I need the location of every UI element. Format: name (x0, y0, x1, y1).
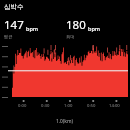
staticText: 최대 (66, 34, 75, 39)
staticText: 0:50 (87, 103, 96, 109)
staticText: 0:30 (41, 103, 50, 109)
button[interactable]: Heart rate chart (0, 45, 130, 103)
staticText: 1:00 (64, 103, 73, 109)
staticText: bpm (26, 25, 39, 32)
button[interactable]: 147 (4, 17, 66, 39)
staticText: 0:00 (18, 103, 27, 109)
staticText: 147 (4, 17, 24, 33)
staticText: 180 (66, 17, 86, 33)
staticText: bpm (88, 25, 101, 32)
staticText: 14:00 (109, 103, 120, 109)
staticText: 평균 (4, 34, 13, 39)
staticText: 1.0(km) (56, 118, 74, 125)
button[interactable]: 심박수 (0, 0, 28, 12)
button[interactable]: 180 (66, 17, 126, 39)
